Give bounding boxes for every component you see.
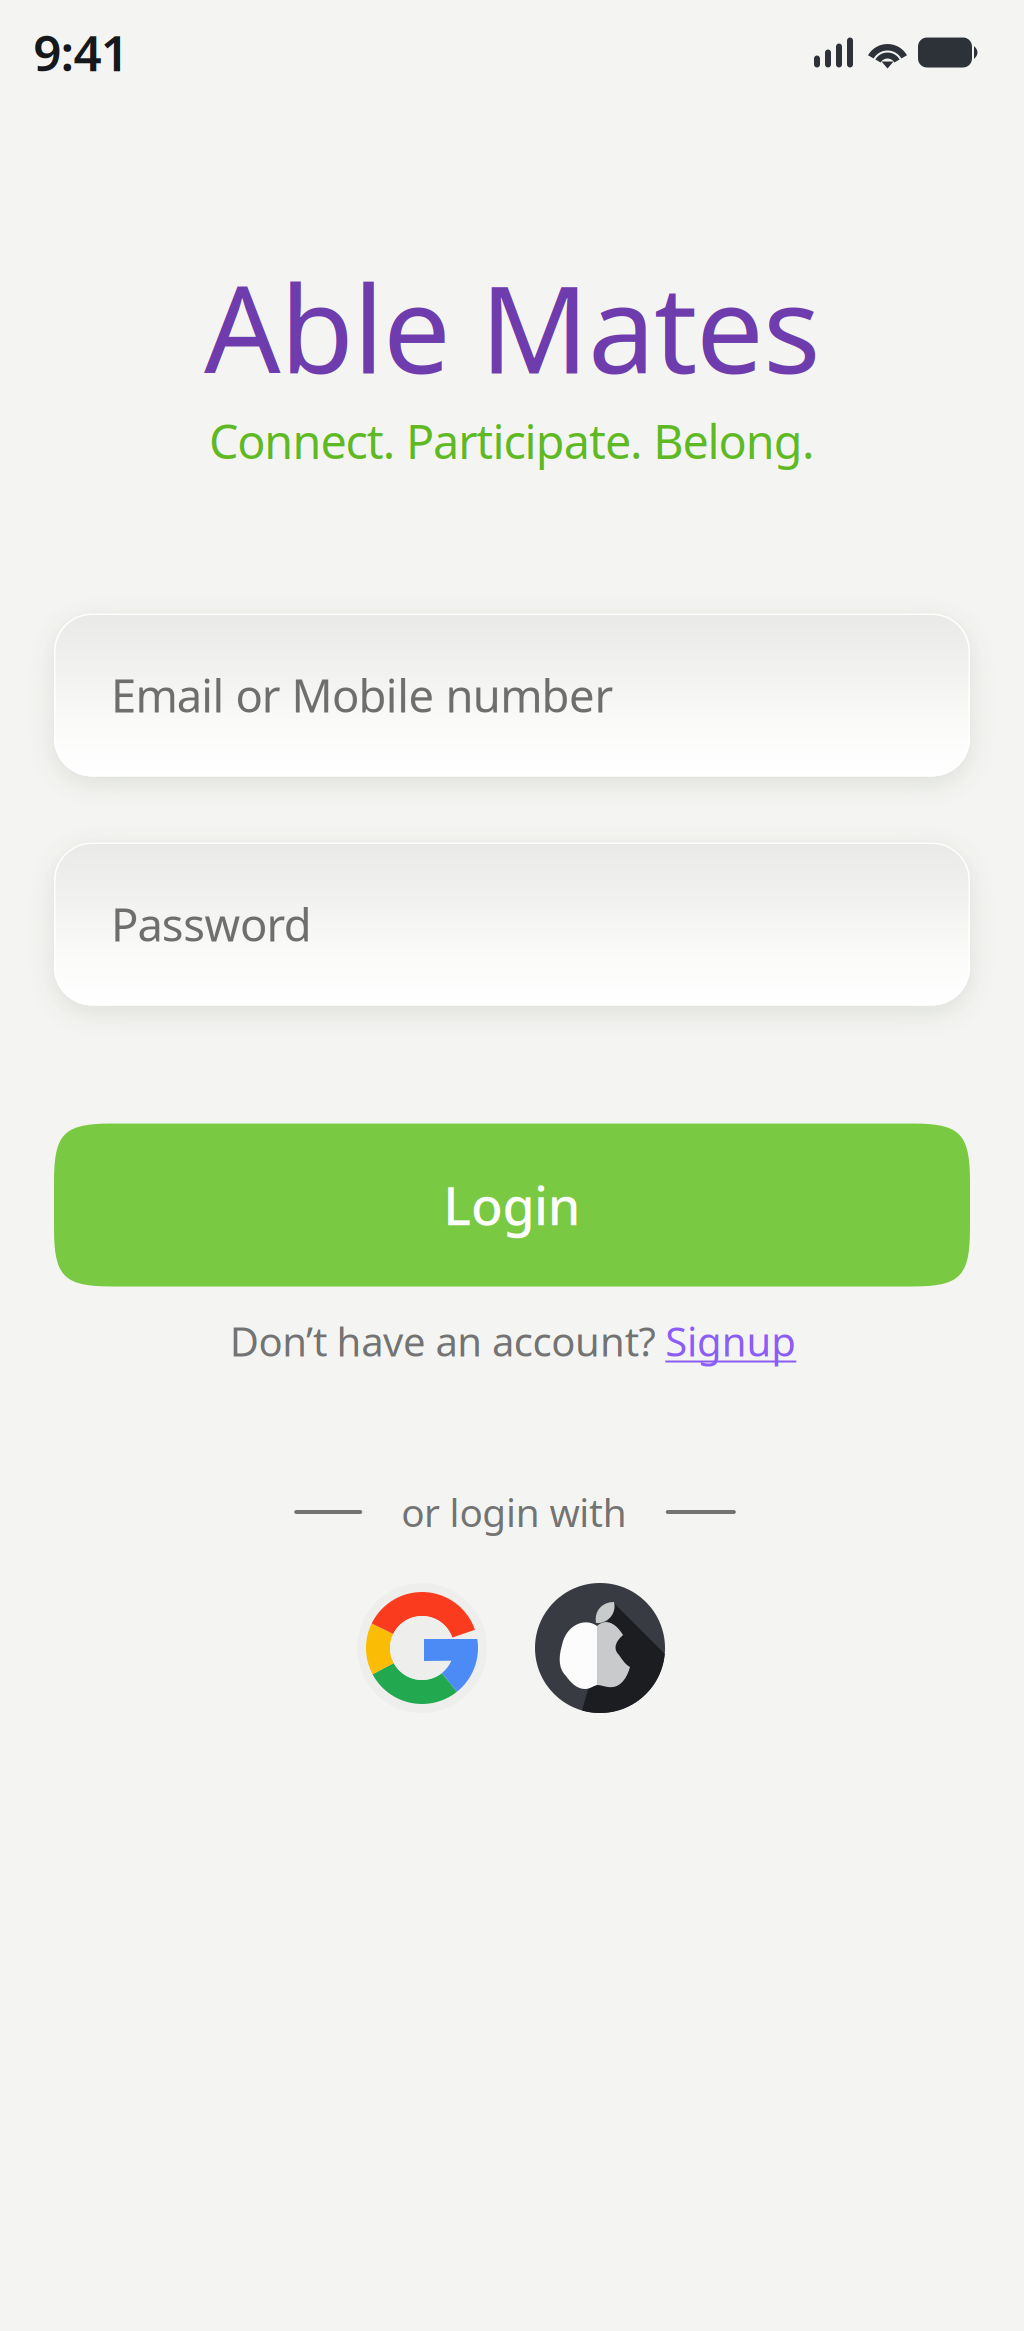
staticText: 9:41 (33, 19, 129, 85)
staticText: Don’t have an account? (230, 1314, 665, 1367)
button[interactable]: Continue with Google (357, 1583, 487, 1713)
button[interactable]: Continue with Apple (535, 1583, 665, 1713)
button[interactable]: Login (54, 1123, 970, 1286)
staticText: Email or Mobile number (111, 665, 613, 725)
button[interactable]: Password (54, 842, 970, 1005)
staticText: Login (443, 1170, 581, 1240)
button[interactable]: Email or Mobile number (54, 613, 970, 776)
staticText: Password (111, 894, 312, 954)
staticText: Signup (665, 1314, 796, 1367)
staticText: Connect. Participate. Belong. (209, 410, 815, 472)
staticText: or login with (401, 1486, 627, 1538)
staticText: Able Mates (204, 247, 820, 407)
button[interactable]: Don’t have an account? (230, 1314, 796, 1367)
